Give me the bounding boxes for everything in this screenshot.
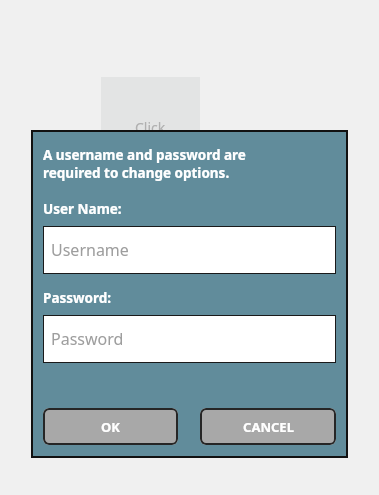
button[interactable]: Username	[43, 226, 336, 274]
staticText: CANCEL	[243, 418, 294, 436]
staticText: Click	[135, 118, 166, 137]
staticText: Password:	[43, 289, 112, 307]
button[interactable]: Password	[43, 315, 336, 363]
staticText: User Name:	[43, 200, 122, 218]
staticText: OK	[101, 418, 120, 436]
button[interactable]: CANCEL	[200, 408, 336, 445]
staticText: Password	[51, 328, 124, 350]
button[interactable]: Click	[101, 77, 200, 143]
button[interactable]: OK	[43, 408, 178, 445]
staticText: Username	[51, 239, 129, 261]
staticText: A username and password are required to …	[43, 146, 246, 182]
